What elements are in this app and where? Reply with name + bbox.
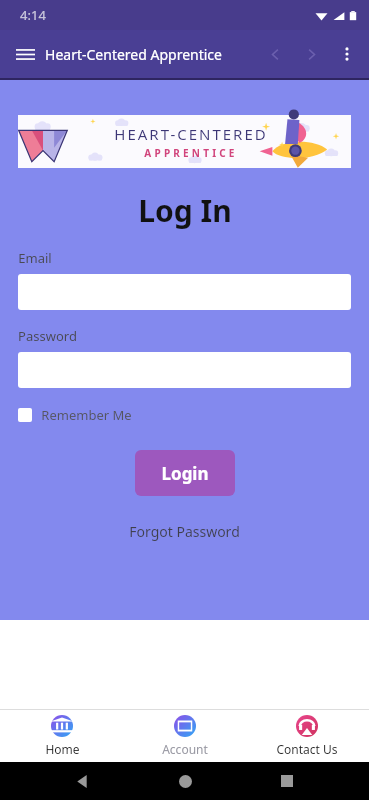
staticText: Email [18, 249, 52, 267]
button[interactable]: Forward [293, 36, 329, 72]
staticText: Log In [138, 190, 232, 231]
staticText: Heart-Centered Apprentice [45, 45, 222, 64]
staticText: Password [18, 327, 77, 345]
button[interactable]: Back [62, 762, 102, 800]
staticText: Login [161, 462, 209, 485]
button[interactable]: Account [125, 710, 245, 762]
staticText: 4:14 [20, 6, 46, 24]
button[interactable]: Recent apps [267, 762, 307, 800]
button[interactable]: Remember Me [18, 406, 132, 424]
staticText: Forgot Password [129, 522, 240, 541]
staticText: Contact Us [276, 741, 338, 757]
button[interactable]: Login [135, 450, 235, 496]
button[interactable]: More options [329, 36, 365, 72]
staticText: HEART-CENTERED [114, 124, 268, 144]
staticText: APPRENTICE [144, 146, 238, 160]
button[interactable]: Home [165, 762, 205, 800]
staticText: Remember Me [41, 406, 132, 424]
button[interactable]: Contact Us [247, 710, 367, 762]
staticText: Home [45, 741, 80, 757]
button[interactable]: Home [2, 710, 122, 762]
button[interactable]: Forgot Password [125, 518, 244, 545]
button[interactable]: Open navigation menu [8, 37, 42, 71]
button[interactable]: Back [257, 36, 293, 72]
staticText: Account [162, 741, 208, 757]
